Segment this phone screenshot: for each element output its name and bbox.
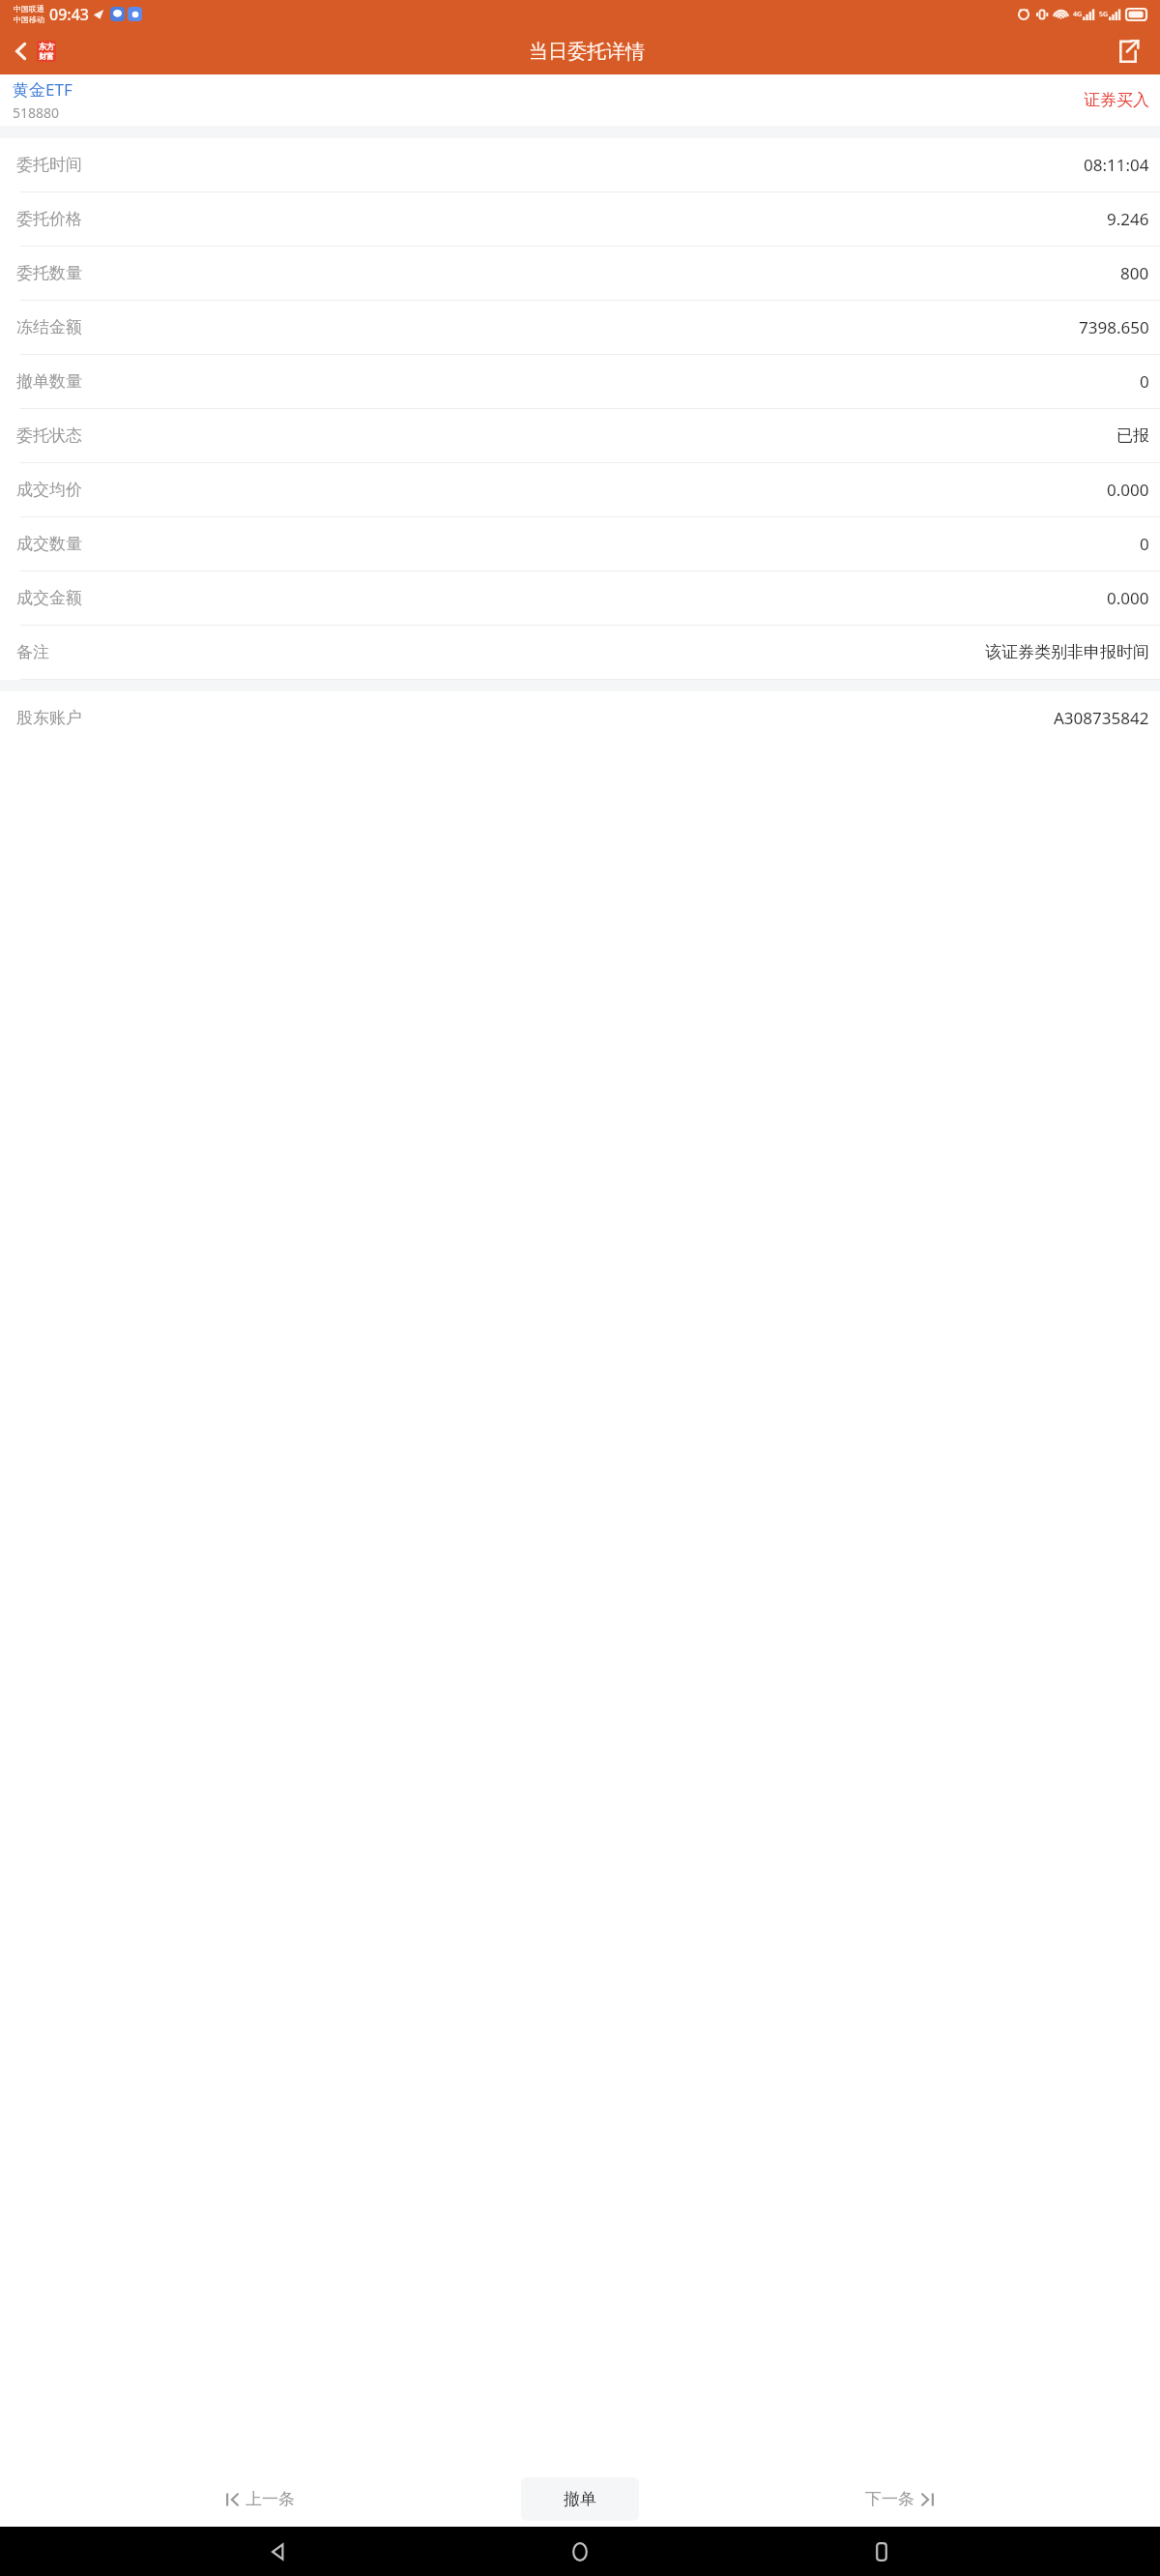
staticText: 0.000 [1107,479,1149,501]
staticText: 518880 [13,103,60,122]
button[interactable]: 委托状态 [0,409,1160,462]
staticText: 中国移动 [14,15,44,24]
staticText: 08:11:04 [1084,154,1149,176]
button[interactable]: 返回 [255,2529,302,2575]
staticText: 0.000 [1107,587,1149,609]
button[interactable]: 成交均价 [0,463,1160,516]
staticText: 0 [1140,370,1149,393]
button[interactable]: 委托数量 [0,247,1160,300]
button[interactable]: 成交金额 [0,571,1160,625]
staticText: 该证券类别非申报时间 [985,642,1149,662]
staticText: 当日委托详情 [529,40,645,64]
staticText: 09:43 [49,4,89,25]
staticText: 委托数量 [16,263,82,283]
staticText: 股东账户 [16,708,82,728]
staticText: 成交金额 [16,588,82,608]
button[interactable]: 委托时间 [0,138,1160,191]
staticText: 委托状态 [16,425,82,446]
staticText: 财富 [39,51,54,61]
button[interactable]: 备注 [0,626,1160,679]
staticText: 委托价格 [16,209,82,229]
button[interactable]: 黄金ETF [13,78,72,122]
staticText: 证券买入 [1084,90,1149,110]
staticText: 4G [1073,10,1083,19]
staticText: 9.246 [1107,208,1149,230]
button[interactable]: 委托价格 [0,192,1160,246]
staticText: 5G [1099,10,1109,19]
button[interactable]: 主页 [557,2529,603,2575]
button[interactable]: 冻结金额 [0,301,1160,354]
staticText: 下一条 [865,2489,914,2509]
button[interactable]: 成交数量 [0,517,1160,571]
button[interactable]: 最近任务 [858,2529,905,2575]
button[interactable]: 股东账户 [0,691,1160,745]
button[interactable]: 撤单 [521,2477,639,2521]
staticText: 备注 [16,642,49,662]
staticText: 7398.650 [1079,316,1149,338]
staticText: 成交均价 [16,480,82,500]
button[interactable]: 下一条 [639,2472,1160,2527]
staticText: 委托时间 [16,155,82,175]
staticText: A308735842 [1054,707,1149,729]
staticText: 上一条 [246,2489,295,2509]
staticText: 东方 [39,42,54,51]
staticText: 0 [1140,533,1149,555]
staticText: 撤单 [564,2489,596,2509]
button[interactable]: 上一条 [0,2472,521,2527]
staticText: 黄金ETF [13,78,72,101]
button[interactable]: 分享 [1112,35,1145,68]
staticText: 已报 [1116,425,1149,446]
staticText: 800 [1120,262,1149,284]
staticText: 撤单数量 [16,371,82,392]
staticText: 成交数量 [16,534,82,554]
button[interactable]: 返回 [6,41,62,62]
staticText: 冻结金额 [16,317,82,337]
staticText: 中国联通 [14,4,44,14]
button[interactable]: 撤单数量 [0,355,1160,408]
